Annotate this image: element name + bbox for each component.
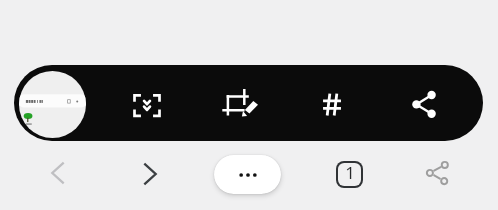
button[interactable]: Share screenshot bbox=[396, 66, 452, 138]
staticText: 1 bbox=[345, 163, 355, 184]
button[interactable]: More options bbox=[214, 155, 281, 194]
button[interactable]: Crop and edit bbox=[213, 66, 269, 138]
button[interactable]: Screenshot preview bbox=[19, 71, 86, 138]
button[interactable]: Scroll capture bbox=[119, 66, 175, 138]
button[interactable]: Forward bbox=[130, 154, 170, 194]
button[interactable]: Add tag bbox=[304, 66, 360, 138]
button[interactable]: Share page bbox=[417, 153, 457, 193]
button[interactable]: Back bbox=[38, 153, 78, 193]
button[interactable]: Tabs bbox=[329, 154, 369, 194]
